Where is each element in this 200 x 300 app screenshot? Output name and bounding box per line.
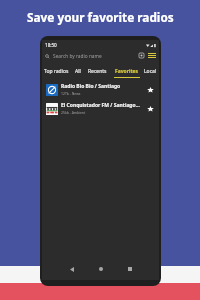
- button[interactable]: Back: [65, 262, 79, 276]
- button[interactable]: All: [71, 64, 84, 78]
- button[interactable]: Local: [142, 64, 159, 78]
- staticText: Top radios: [44, 68, 69, 75]
- staticText: 12Tb - News: [61, 91, 81, 96]
- staticText: Radio Bio Bio / Santiago: [61, 83, 121, 90]
- button[interactable]: Recent apps: [123, 262, 137, 276]
- button[interactable]: Radio Bio Bio / Santiago: [42, 80, 159, 99]
- staticText: Recents: [88, 68, 107, 75]
- button[interactable]: Top radios: [42, 64, 71, 78]
- button[interactable]: Favorite: [145, 85, 155, 95]
- staticText: Favorites: [115, 68, 139, 75]
- staticText: Save your favorite radios: [27, 9, 174, 25]
- button[interactable]: Home: [94, 262, 108, 276]
- button[interactable]: Favorites: [111, 64, 142, 78]
- button[interactable]: Recents: [84, 64, 111, 78]
- button[interactable]: Sleep timer: [138, 52, 145, 59]
- staticText: 18:50: [45, 42, 57, 48]
- button[interactable]: Menu: [147, 52, 156, 59]
- staticText: Local: [144, 68, 157, 75]
- staticText: Search by radio name: [53, 53, 102, 60]
- button[interactable]: Favorite: [145, 104, 155, 114]
- staticText: 25kb - Ambient: [61, 110, 86, 115]
- staticText: El Conquistador FM / Santiago...: [61, 102, 140, 109]
- button[interactable]: El Conquistador FM / Santiago...: [42, 99, 159, 118]
- staticText: All: [75, 68, 81, 75]
